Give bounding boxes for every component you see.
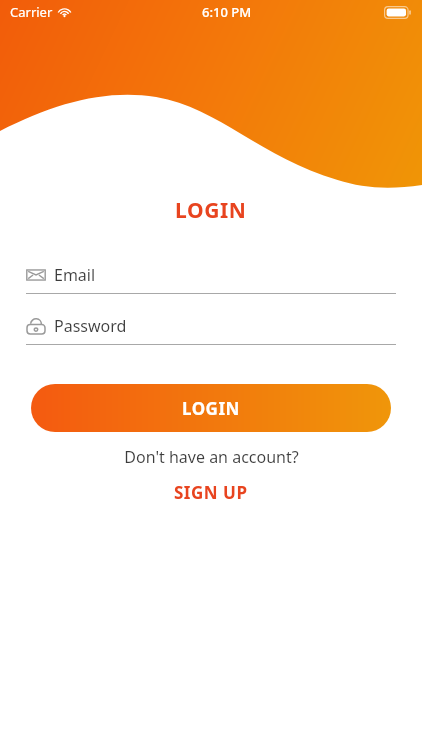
staticText: Don't have an account? bbox=[124, 446, 299, 468]
staticText: 6:10 PM bbox=[202, 3, 252, 21]
button[interactable]: Email bbox=[26, 261, 396, 294]
staticText: SIGN UP bbox=[174, 481, 248, 504]
staticText: Password bbox=[54, 315, 127, 337]
button[interactable]: LOGIN bbox=[31, 384, 391, 432]
staticText: LOGIN bbox=[175, 196, 247, 225]
staticText: Email bbox=[54, 264, 96, 286]
staticText: LOGIN bbox=[182, 397, 240, 420]
staticText: Carrier bbox=[10, 3, 53, 21]
button[interactable]: SIGN UP bbox=[164, 478, 258, 507]
button[interactable]: Password bbox=[26, 312, 396, 345]
